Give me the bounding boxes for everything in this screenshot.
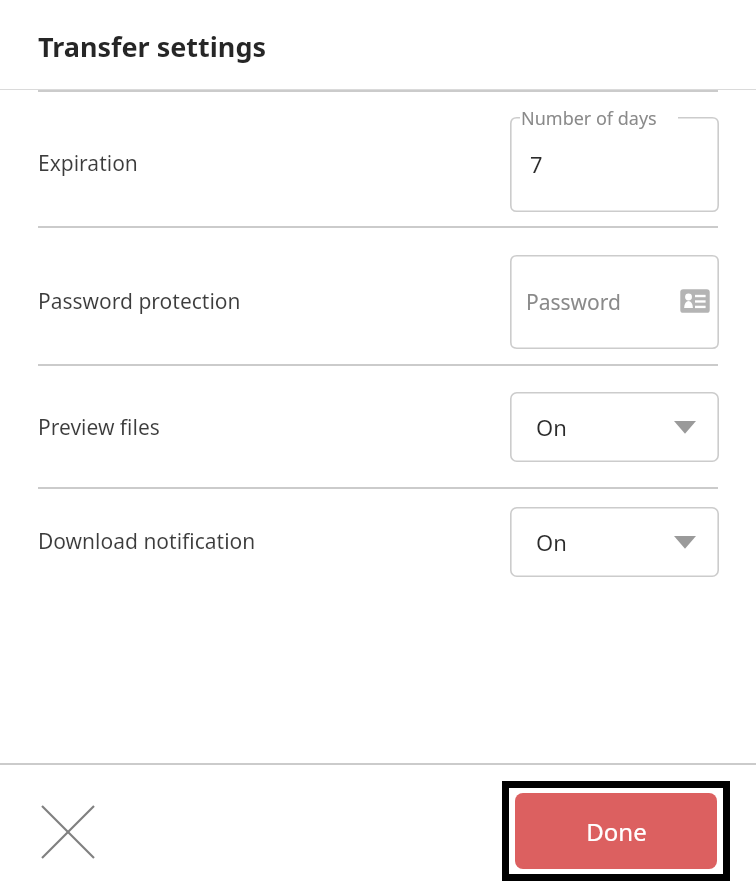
- staticText: Preview files: [38, 413, 160, 442]
- button[interactable]: Done: [502, 781, 730, 881]
- staticText: On: [536, 412, 567, 442]
- button[interactable]: Preview files: On: [510, 392, 719, 462]
- staticText: Transfer settings: [38, 28, 267, 65]
- staticText: Password: [526, 288, 621, 317]
- staticText: Number of days: [521, 106, 657, 131]
- staticText: On: [536, 527, 567, 557]
- staticText: Download notification: [38, 527, 256, 556]
- button[interactable]: Use saved password: [679, 285, 711, 317]
- staticText: Done: [586, 815, 647, 848]
- button[interactable]: Download notification: On: [510, 507, 719, 577]
- button[interactable]: Close: [30, 794, 106, 870]
- staticText: Password protection: [38, 287, 241, 316]
- staticText: 7: [530, 149, 543, 179]
- staticText: Expiration: [38, 149, 138, 178]
